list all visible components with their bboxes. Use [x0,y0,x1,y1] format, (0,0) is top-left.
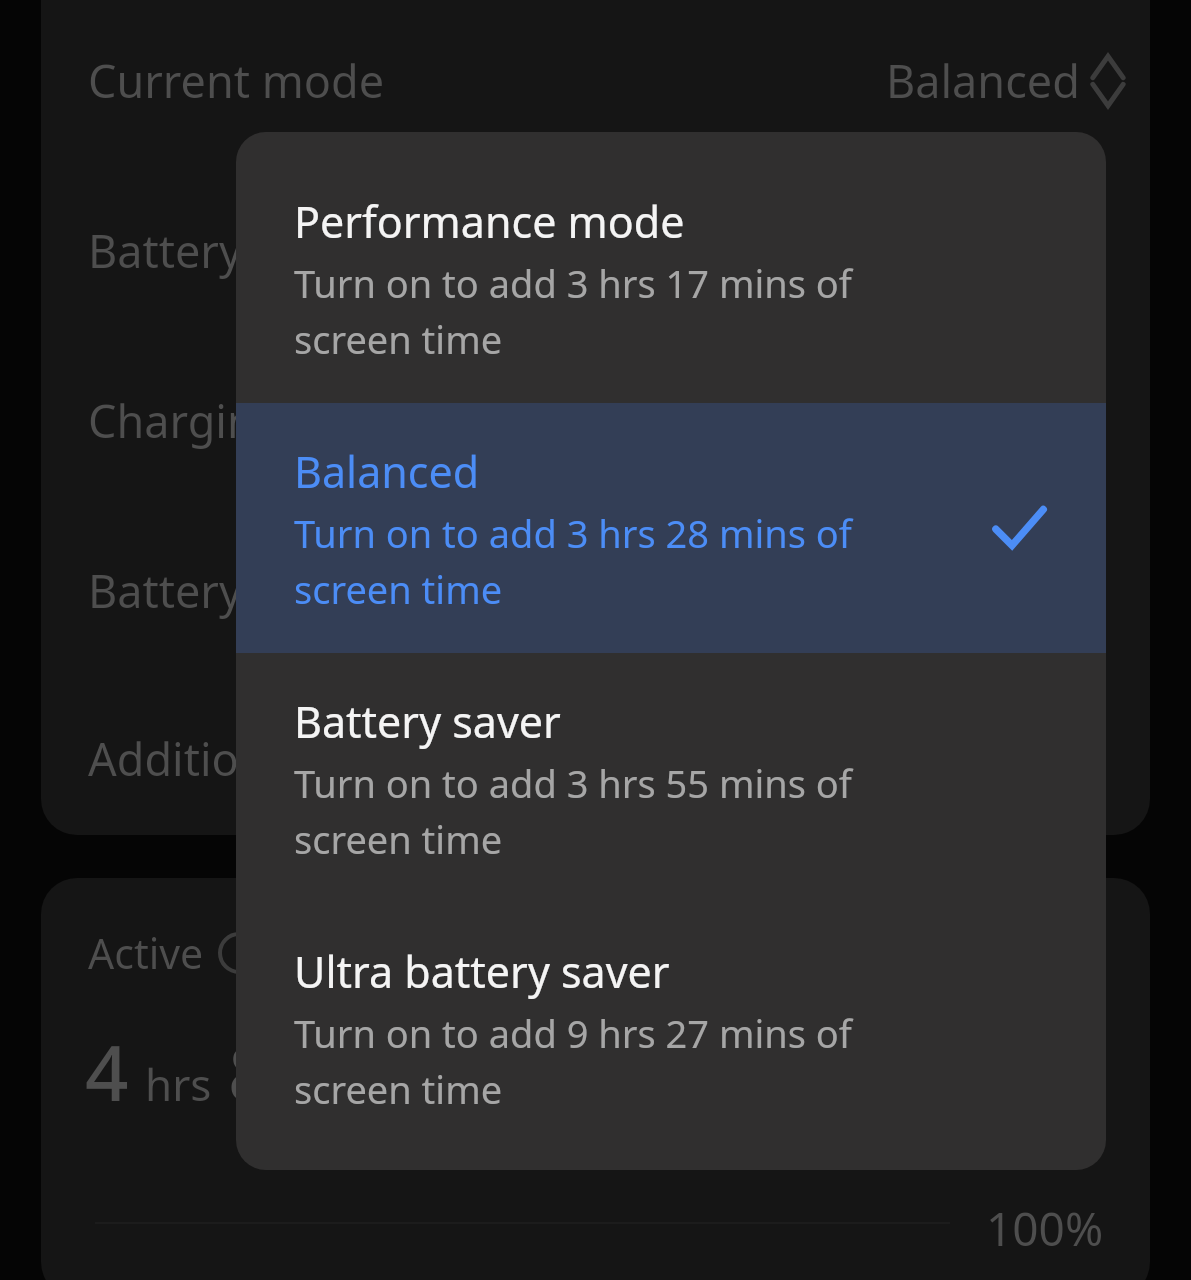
button[interactable]: Ultra battery saver [236,903,1106,1153]
staticText: 8 [228,1020,272,1124]
staticText: Additional [88,728,304,789]
staticText: 4 [85,1020,129,1124]
staticText: Battery [88,220,242,281]
other: Selected [990,499,1048,557]
staticText: Turn on to add 9 hrs 27 mins of screen t… [294,1007,852,1115]
staticText: Active [88,925,204,981]
button[interactable]: Balanced [236,403,1106,653]
button[interactable]: Balanced [886,50,1126,111]
staticText: hrs [145,1054,212,1114]
button[interactable]: Performance mode [236,153,1106,403]
staticText: Turn on to add 3 hrs 28 mins of screen t… [294,507,852,615]
staticText: Turn on to add 3 hrs 17 mins of screen t… [294,257,852,365]
staticText: Battery saver [294,692,561,751]
staticText: Balanced [886,50,1080,111]
staticText: Turn on to add 3 hrs 55 mins of screen t… [294,757,852,865]
button[interactable]: Battery saver [236,653,1106,903]
staticText: Performance mode [294,192,685,251]
staticText: Battery [88,560,242,621]
staticText: 100% [986,1197,1104,1260]
other: Change mode [1090,53,1126,109]
staticText: Ultra battery saver [294,942,670,1001]
staticText: Balanced [294,442,480,501]
staticText: Charging [88,390,283,451]
staticText: Current mode [88,50,385,111]
